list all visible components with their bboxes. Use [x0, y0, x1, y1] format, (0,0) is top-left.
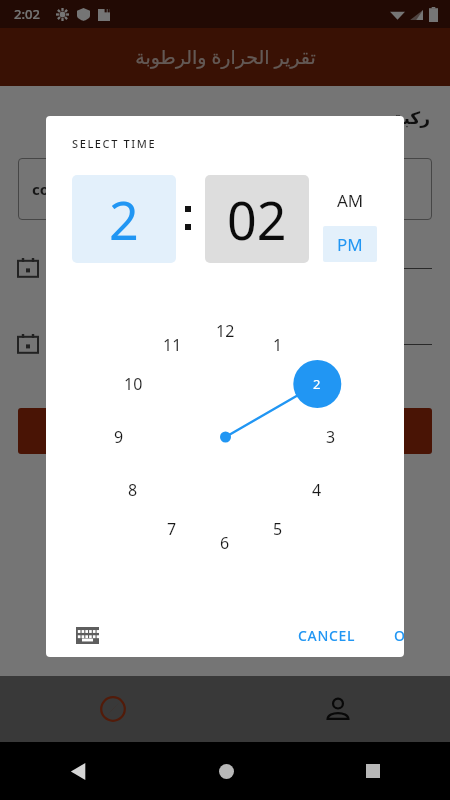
button[interactable]: 2: [301, 370, 333, 398]
button[interactable]: 8: [117, 476, 149, 504]
button[interactable]: 2: [72, 175, 176, 263]
staticText: PM: [337, 233, 363, 256]
staticText: SELECT TIME: [72, 136, 157, 151]
button[interactable]: [18, 408, 432, 454]
button[interactable]: Explore: [0, 676, 225, 742]
button[interactable]: 10: [117, 370, 149, 398]
button[interactable]: 12: [209, 317, 241, 345]
staticText: 12: [216, 320, 235, 342]
button[interactable]: 9: [103, 423, 135, 451]
button[interactable]: CANCEL: [289, 616, 365, 654]
staticText: 02: [227, 184, 287, 255]
staticText: AM: [337, 189, 364, 212]
button[interactable]: 11: [156, 331, 188, 359]
button[interactable]: 6: [209, 529, 241, 557]
staticText: 10: [124, 373, 143, 395]
button[interactable]: co: [18, 158, 432, 220]
button[interactable]: AM: [323, 175, 377, 225]
staticText: 8: [128, 479, 138, 501]
button[interactable]: Switch to text input: [68, 616, 106, 654]
staticText: 11: [163, 334, 182, 356]
staticText: OK: [394, 626, 404, 645]
staticText: 2: [313, 375, 321, 393]
button[interactable]: 3: [315, 423, 347, 451]
button[interactable]: Profile: [225, 676, 450, 742]
staticText: 2: [109, 184, 139, 255]
staticText: 3: [326, 426, 336, 448]
button[interactable]: 1: [262, 331, 294, 359]
staticText: CANCEL: [298, 626, 356, 645]
button[interactable]: 02: [205, 175, 309, 263]
staticText: ركبة: [0, 108, 430, 128]
staticText: 7: [167, 518, 177, 540]
staticText: 2:02: [14, 5, 40, 23]
staticText: co: [32, 179, 50, 199]
button[interactable]: OK: [376, 616, 404, 654]
staticText: تقرير الحرارة والرطوبة: [135, 44, 316, 70]
staticText: 6: [220, 532, 230, 554]
button[interactable]: 4: [301, 476, 333, 504]
button[interactable]: 7: [156, 515, 188, 543]
staticText: 1: [273, 334, 283, 356]
staticText: 5: [273, 518, 283, 540]
staticText: 4: [312, 479, 322, 501]
button[interactable]: PM: [323, 226, 377, 262]
button[interactable]: 5: [262, 515, 294, 543]
staticText: 9: [114, 426, 124, 448]
